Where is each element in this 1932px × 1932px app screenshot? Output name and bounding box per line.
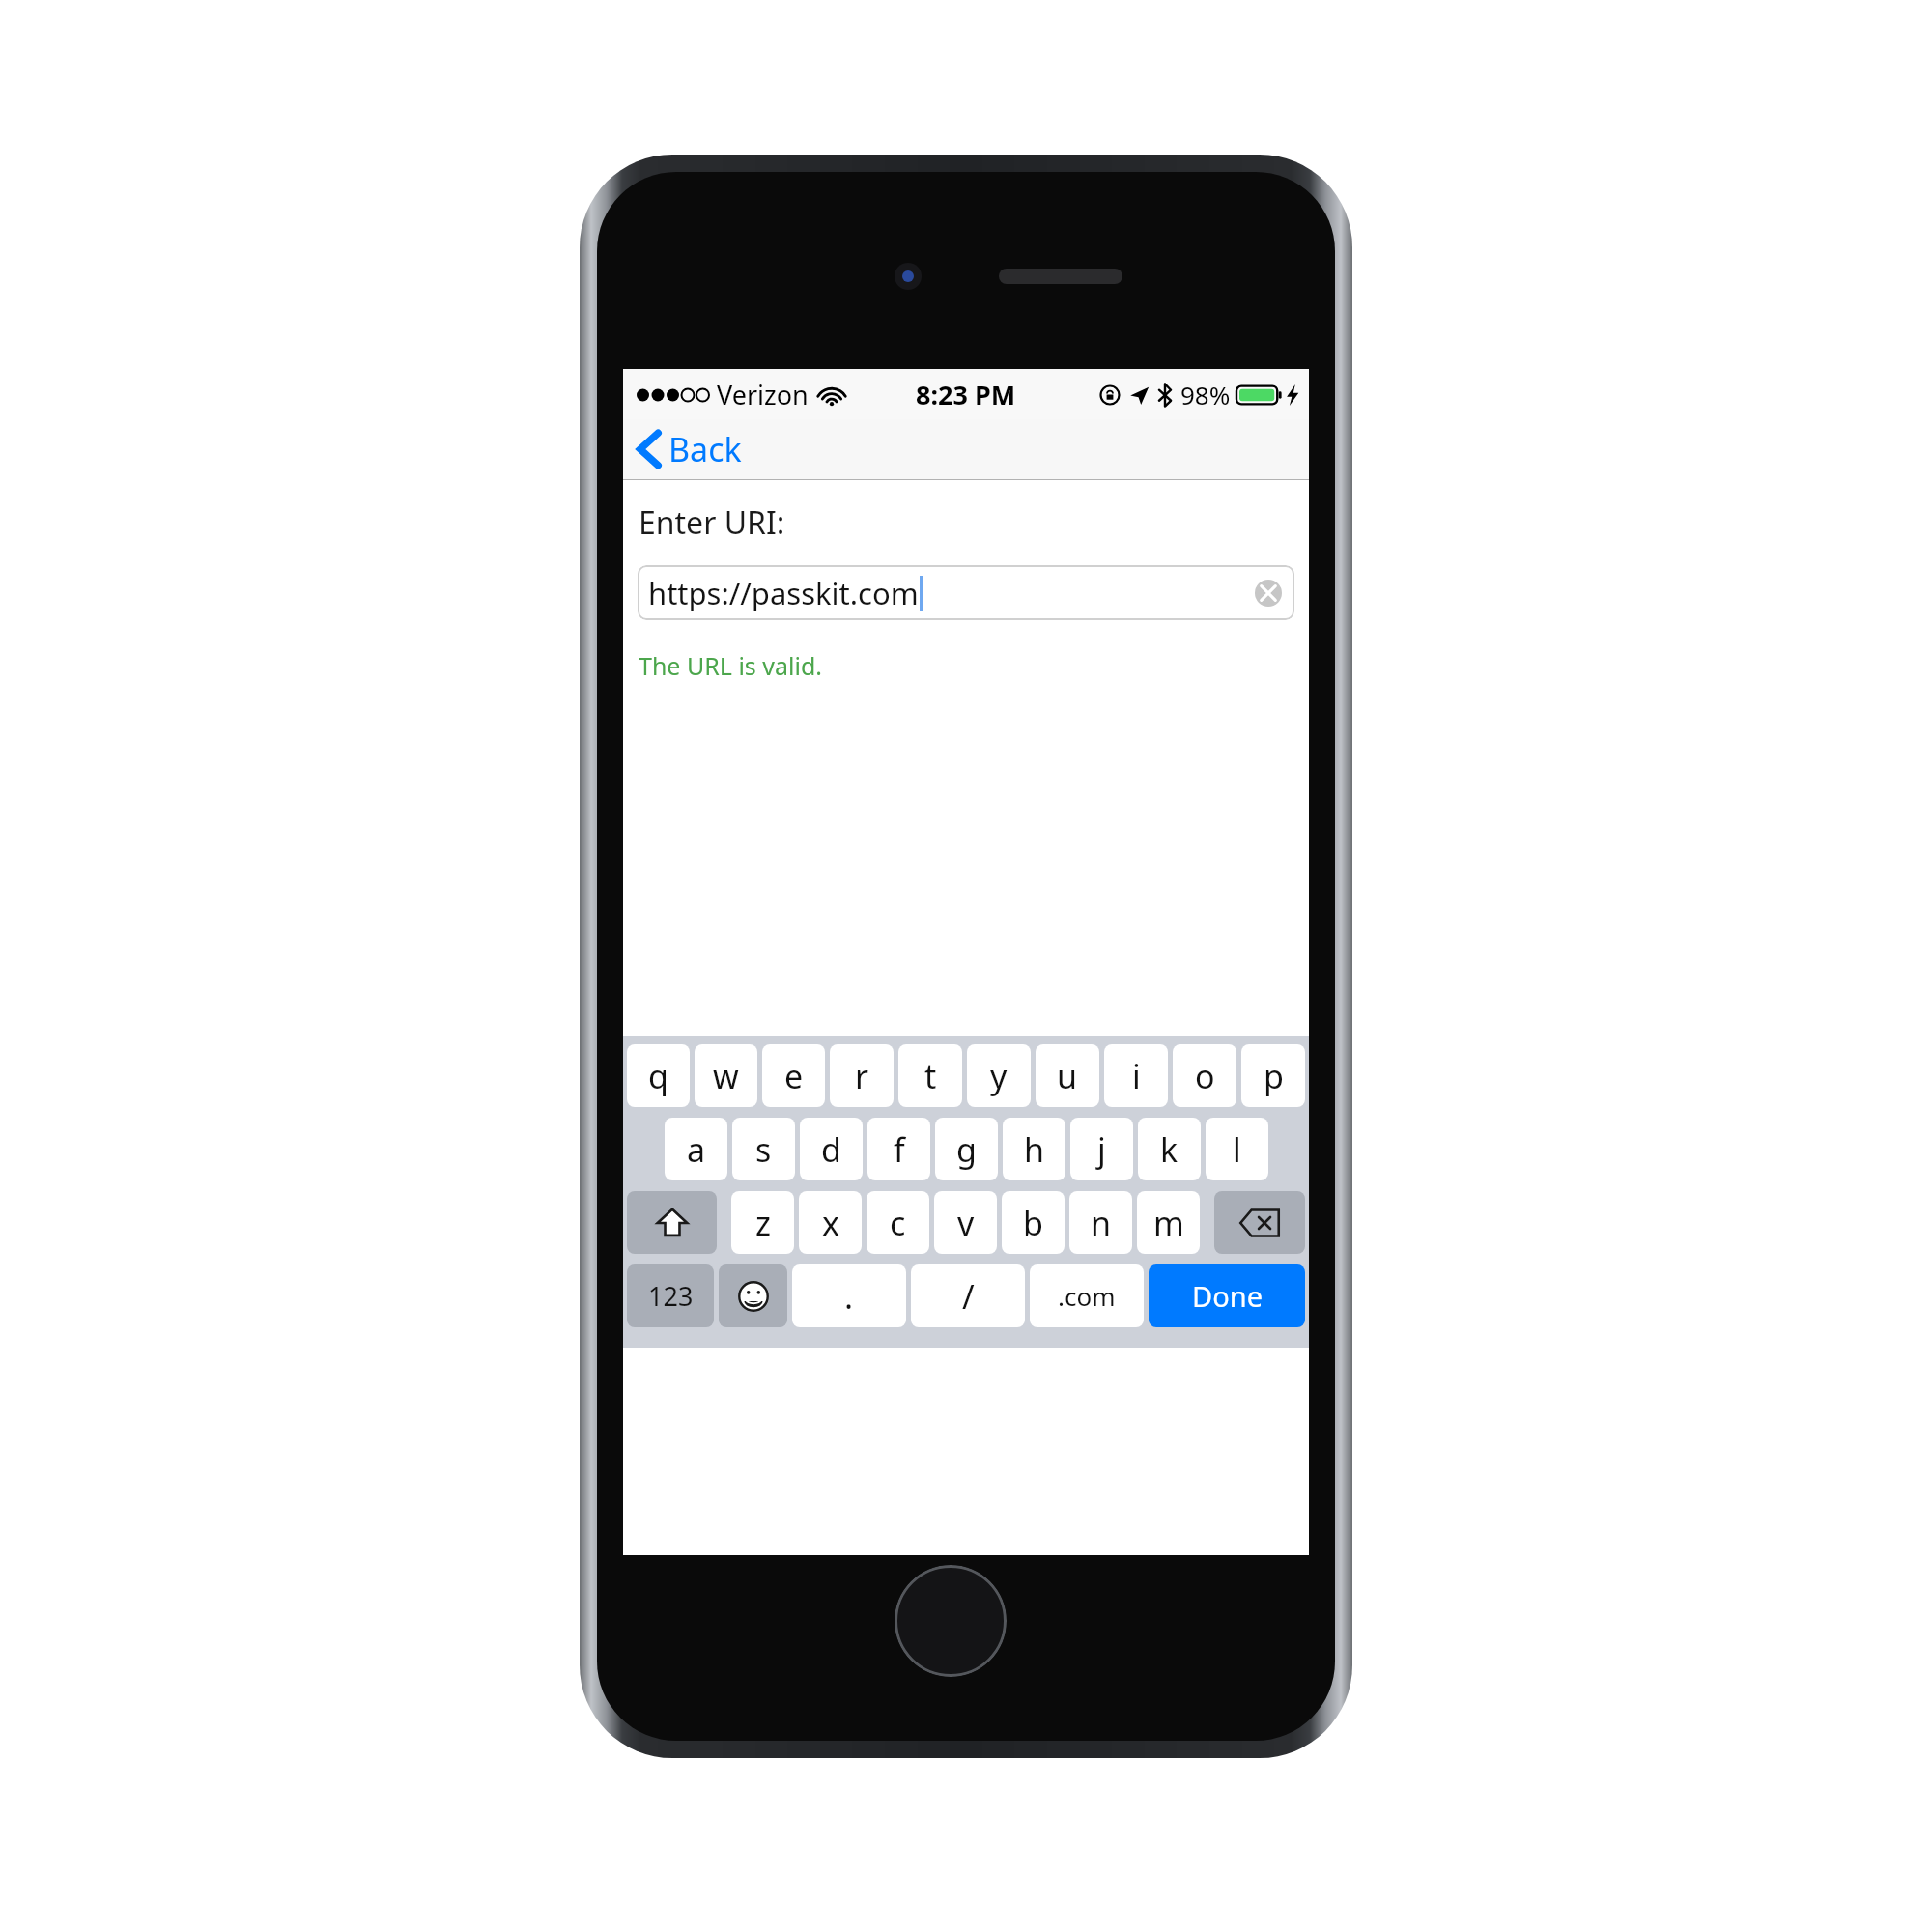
staticText: w — [713, 1054, 739, 1098]
button[interactable]: w — [695, 1044, 757, 1107]
staticText: h — [1024, 1127, 1045, 1172]
staticText: n — [1091, 1201, 1112, 1245]
staticText: Enter URI: — [639, 501, 785, 544]
staticText: https://passkit.com — [648, 573, 919, 613]
staticText: . — [844, 1274, 854, 1319]
staticText: c — [890, 1201, 906, 1245]
button[interactable]: g — [935, 1118, 998, 1180]
staticText: Back — [668, 427, 742, 471]
button[interactable]: i — [1104, 1044, 1168, 1107]
staticText: t — [924, 1054, 937, 1098]
staticText: r — [855, 1054, 869, 1098]
button[interactable]: s — [732, 1118, 795, 1180]
button[interactable]: Home — [895, 1565, 1007, 1677]
button[interactable]: . — [792, 1264, 906, 1327]
staticText: 98% — [1180, 378, 1231, 412]
button[interactable]: Done — [1149, 1264, 1305, 1327]
button[interactable]: u — [1036, 1044, 1099, 1107]
button[interactable]: f — [867, 1118, 930, 1180]
button[interactable]: y — [967, 1044, 1031, 1107]
staticText: b — [1023, 1201, 1043, 1245]
staticText: i — [1132, 1054, 1141, 1098]
button[interactable]: q — [627, 1044, 690, 1107]
button[interactable]: e — [762, 1044, 825, 1107]
staticText: q — [648, 1054, 668, 1098]
button[interactable]: m — [1137, 1191, 1200, 1254]
staticText: v — [957, 1201, 975, 1245]
button[interactable]: https://passkit.com — [638, 565, 1294, 620]
button[interactable]: k — [1138, 1118, 1201, 1180]
staticText: l — [1233, 1127, 1241, 1172]
staticText: z — [755, 1201, 771, 1245]
staticText: x — [822, 1201, 839, 1245]
staticText: d — [821, 1127, 841, 1172]
button[interactable]: d — [800, 1118, 863, 1180]
staticText: k — [1160, 1127, 1179, 1172]
staticText: m — [1153, 1201, 1184, 1245]
button[interactable]: Emoji — [719, 1264, 787, 1327]
staticText: 123 — [648, 1278, 694, 1314]
staticText: j — [1097, 1127, 1106, 1172]
button[interactable]: 123 — [627, 1264, 714, 1327]
button[interactable]: h — [1003, 1118, 1065, 1180]
staticText: p — [1264, 1054, 1284, 1098]
staticText: / — [962, 1274, 975, 1319]
button[interactable]: Backspace — [1214, 1191, 1305, 1254]
button[interactable]: c — [867, 1191, 929, 1254]
staticText: The URL is valid. — [639, 649, 823, 682]
staticText: e — [784, 1054, 804, 1098]
staticText: u — [1057, 1054, 1078, 1098]
button[interactable]: a — [665, 1118, 727, 1180]
staticText: y — [990, 1054, 1008, 1098]
button[interactable]: x — [799, 1191, 862, 1254]
staticText: Done — [1192, 1277, 1263, 1315]
staticText: .com — [1058, 1279, 1116, 1313]
staticText: 8:23 PM — [916, 377, 1016, 412]
button[interactable]: t — [898, 1044, 962, 1107]
staticText: a — [687, 1127, 706, 1172]
button[interactable]: / — [911, 1264, 1025, 1327]
button[interactable]: j — [1070, 1118, 1133, 1180]
button[interactable]: Clear text — [1254, 579, 1283, 608]
button[interactable]: p — [1241, 1044, 1305, 1107]
button[interactable]: o — [1173, 1044, 1236, 1107]
button[interactable]: n — [1069, 1191, 1132, 1254]
staticText: Verizon — [717, 377, 809, 412]
button[interactable]: l — [1206, 1118, 1268, 1180]
button[interactable]: r — [830, 1044, 894, 1107]
button[interactable]: Shift — [627, 1191, 717, 1254]
button[interactable]: .com — [1030, 1264, 1144, 1327]
staticText: g — [956, 1127, 977, 1172]
button[interactable]: b — [1002, 1191, 1065, 1254]
staticText: o — [1195, 1054, 1215, 1098]
staticText: f — [894, 1127, 905, 1172]
button[interactable]: z — [731, 1191, 794, 1254]
staticText: s — [755, 1127, 772, 1172]
button[interactable]: Back — [633, 421, 748, 477]
button[interactable]: v — [934, 1191, 997, 1254]
